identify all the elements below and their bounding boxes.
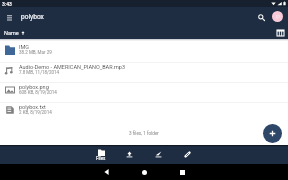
staticText: Files — [96, 156, 106, 161]
staticText: 3:43 — [2, 1, 12, 7]
button[interactable]: Download — [144, 145, 173, 164]
staticText: P — [276, 13, 280, 20]
staticText: 2 KB, 8/19/2014 — [19, 110, 52, 115]
button[interactable]: Recents — [163, 164, 201, 180]
button[interactable]: Name — [4, 30, 25, 36]
button[interactable]: polybox.txt — [0, 103, 288, 123]
staticText: Audio-Demo - AMERICAN_PIANO_BAR.mp3 — [19, 64, 126, 70]
button[interactable]: Links — [173, 145, 202, 164]
button[interactable]: Menu — [2, 10, 16, 24]
button[interactable]: IMG — [0, 43, 288, 63]
staticText: 38.2 MB, Mar 29 — [19, 50, 52, 55]
staticText: Name — [4, 30, 19, 36]
button[interactable]: polybox.png — [0, 83, 288, 103]
button[interactable]: Home — [125, 164, 163, 180]
button[interactable]: Back — [87, 164, 125, 180]
button[interactable]: Search — [254, 10, 268, 24]
button[interactable]: Grid view — [276, 28, 285, 37]
button[interactable]: Audio-Demo - AMERICAN_PIANO_BAR.mp3 — [0, 63, 288, 83]
staticText: polybox.txt — [19, 104, 46, 110]
button[interactable]: Add — [263, 124, 282, 143]
staticText: 608 KB, 8/19/2014 — [19, 90, 57, 95]
button[interactable]: Account — [272, 11, 283, 22]
staticText: polybox — [21, 13, 44, 21]
button[interactable]: Files — [86, 145, 115, 164]
staticText: 7.8 MB, 11/18/2014 — [19, 70, 60, 75]
staticText: 3 files, 1 folder — [129, 131, 159, 136]
button[interactable]: Upload — [115, 145, 144, 164]
staticText: IMG — [19, 44, 30, 50]
staticText: polybox.png — [19, 84, 49, 90]
